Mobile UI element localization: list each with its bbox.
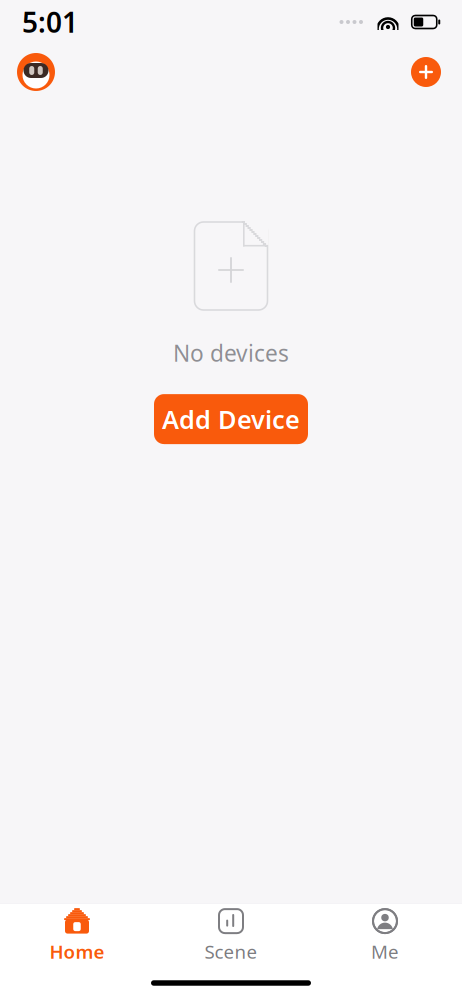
button[interactable]: Scene bbox=[154, 900, 308, 970]
staticText: Add Device bbox=[162, 402, 300, 436]
button[interactable]: Me bbox=[308, 900, 462, 970]
staticText: No devices bbox=[173, 338, 289, 368]
button[interactable]: Home bbox=[0, 900, 154, 970]
staticText: Home bbox=[49, 939, 104, 964]
button[interactable]: Add Device bbox=[154, 394, 308, 444]
staticText: Scene bbox=[204, 939, 257, 964]
button[interactable]: Add bbox=[404, 50, 448, 94]
staticText: Me bbox=[371, 939, 399, 964]
staticText: 5:01 bbox=[22, 3, 78, 41]
button[interactable]: Assistant bbox=[14, 50, 58, 94]
